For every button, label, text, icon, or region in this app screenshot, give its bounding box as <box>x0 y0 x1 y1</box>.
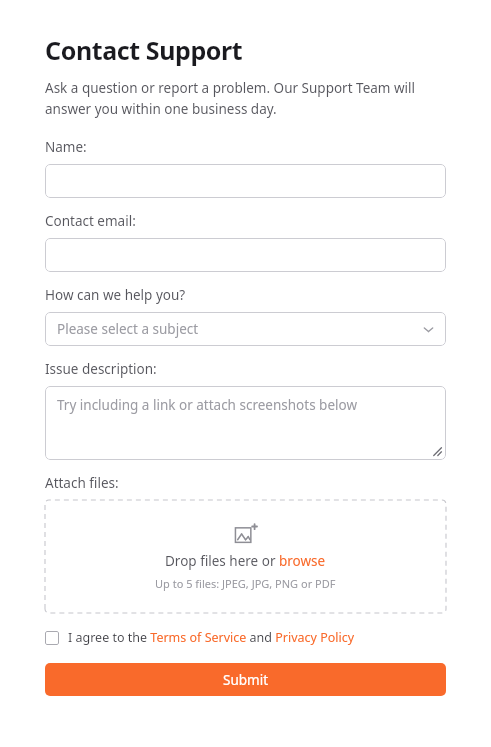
staticText: How can we help you? <box>45 286 186 304</box>
button[interactable] <box>45 238 446 272</box>
staticText: Up to 5 files: JPEG, JPG, PNG or PDF <box>155 576 336 591</box>
button[interactable] <box>45 164 446 198</box>
staticText: Contact email: <box>45 212 136 230</box>
staticText: Contact Support <box>45 33 243 67</box>
staticText: Issue description: <box>45 360 157 378</box>
staticText: I agree to the Terms of Service and Priv… <box>68 629 355 646</box>
staticText: Submit <box>223 671 269 689</box>
staticText: Please select a subject <box>57 320 423 338</box>
staticText: Attach files: <box>45 474 119 492</box>
staticText: Try including a link or attach screensho… <box>57 396 358 414</box>
staticText: Drop files here or browse <box>165 552 326 570</box>
staticText: Ask a question or report a problem. Our … <box>45 79 446 118</box>
button[interactable]: Try including a link or attach screensho… <box>45 386 446 460</box>
button[interactable]: Submit <box>45 663 446 696</box>
button[interactable]: I agree to the Terms of Service and Priv… <box>45 629 446 646</box>
button[interactable]: Please select a subject <box>45 312 446 346</box>
button[interactable]: Attach files drop zone <box>45 500 446 613</box>
staticText: Name: <box>45 138 87 156</box>
